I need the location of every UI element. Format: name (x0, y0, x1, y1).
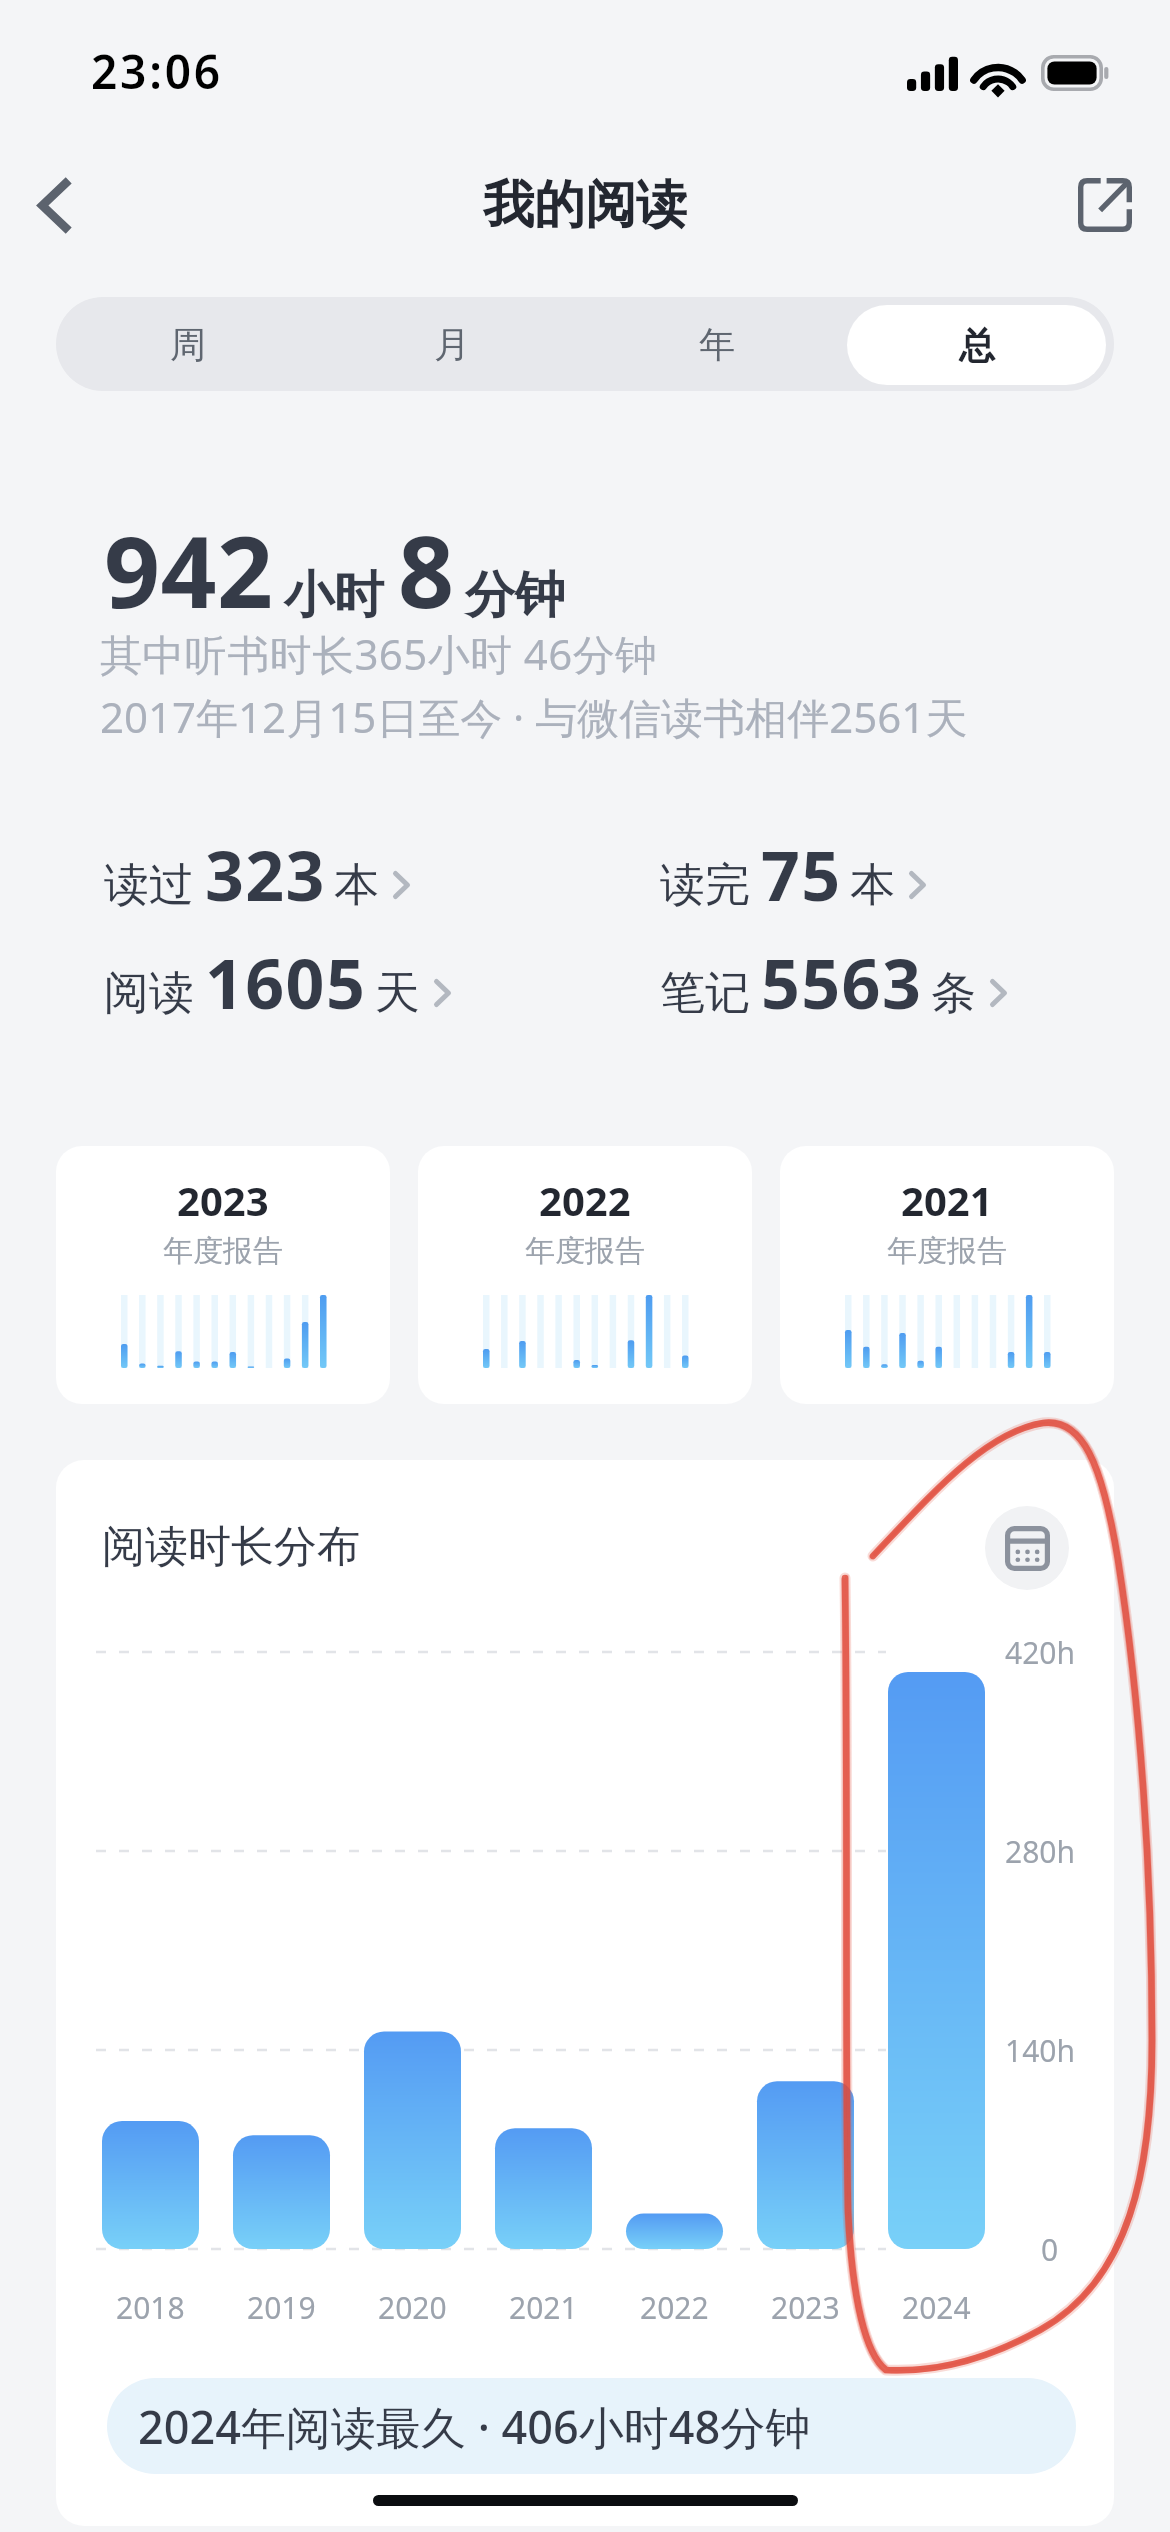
staticText: 2022 (539, 1173, 631, 1227)
staticText: 其中听书时长365小时 46分钟 (100, 625, 658, 682)
staticText: 2023 (177, 1173, 269, 1227)
staticText: 23:06 (91, 40, 223, 103)
staticText: 分钟 (465, 564, 565, 627)
button[interactable]: 总 (847, 305, 1106, 385)
button[interactable]: 读过 (104, 828, 410, 921)
staticText: 2021 (509, 2287, 578, 2328)
staticText: 年度报告 (887, 1232, 1007, 1270)
staticText: 月 (434, 322, 470, 367)
button[interactable]: Share (1062, 162, 1148, 248)
button[interactable]: 读完 (660, 828, 926, 921)
staticText: 总 (959, 323, 995, 368)
button[interactable]: 年 (584, 297, 849, 391)
button[interactable]: Calendar (985, 1506, 1069, 1590)
staticText: 420h (1005, 1632, 1076, 1673)
staticText: 942 (104, 503, 274, 636)
staticText: 2024年阅读最久 · 406小时48分钟 (138, 2396, 811, 2457)
staticText: 年 (699, 322, 735, 367)
staticText: 280h (1005, 1831, 1076, 1872)
staticText: 笔记 (660, 965, 750, 1022)
button[interactable]: 周 (56, 297, 320, 391)
staticText: 2022 (640, 2287, 709, 2328)
button[interactable]: 2021 (780, 1146, 1114, 1404)
staticText: 读过 (104, 857, 194, 914)
staticText: 1605 (205, 936, 367, 1029)
staticText: 8 (398, 503, 455, 636)
staticText: 2023 (771, 2287, 840, 2328)
staticText: 2017年12月15日至今 · 与微信读书相伴2561天 (100, 688, 968, 745)
staticText: 2018 (116, 2287, 185, 2328)
staticText: 阅读时长分布 (102, 1520, 360, 1574)
staticText: 阅读 (104, 965, 194, 1022)
staticText: 75 (761, 828, 842, 921)
staticText: 本 (334, 857, 379, 914)
button[interactable]: 2023 (56, 1146, 390, 1404)
staticText: 条 (931, 965, 976, 1022)
staticText: 年度报告 (525, 1232, 645, 1270)
staticText: 323 (205, 828, 326, 921)
button[interactable]: 阅读 (104, 936, 451, 1029)
staticText: 读完 (660, 857, 750, 914)
staticText: 2024 (902, 2287, 971, 2328)
staticText: 2020 (378, 2287, 447, 2328)
staticText: 5563 (761, 936, 923, 1029)
button[interactable]: 月 (320, 297, 584, 391)
staticText: 2019 (247, 2287, 316, 2328)
staticText: 2021 (901, 1173, 993, 1227)
staticText: 年度报告 (163, 1232, 283, 1270)
staticText: 天 (375, 965, 420, 1022)
button[interactable]: 2022 (418, 1146, 752, 1404)
staticText: 本 (850, 857, 895, 914)
staticText: 周 (170, 322, 206, 367)
staticText: 小时 (284, 564, 384, 627)
staticText: 140h (1005, 2030, 1076, 2071)
staticText: 我的阅读 (483, 173, 687, 237)
staticText: 0 (1041, 2229, 1059, 2270)
button[interactable]: 笔记 (660, 936, 1007, 1029)
button[interactable]: Back (12, 162, 98, 248)
